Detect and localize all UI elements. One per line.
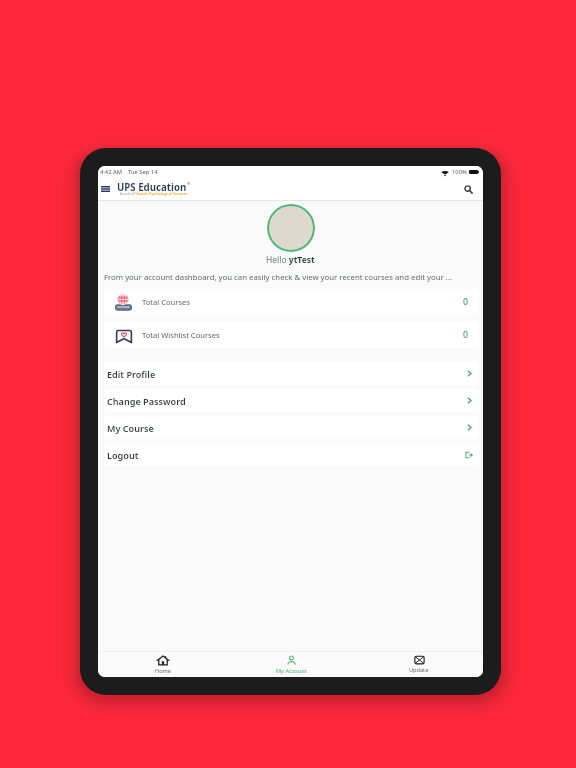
staticText: My Account <box>276 667 307 675</box>
staticText: Change Password <box>107 395 186 407</box>
staticText: 0 <box>463 296 469 308</box>
button[interactable]: My Course <box>104 416 479 439</box>
staticText: Hello ytTest <box>266 254 315 266</box>
staticText: 100% <box>452 168 467 176</box>
staticText: 0 <box>463 329 469 341</box>
staticText: A unit of Utsaah Psychological Services <box>120 191 188 196</box>
button[interactable]: Change Password <box>104 389 479 412</box>
button[interactable]: Search <box>456 178 480 200</box>
staticText: Edit Profile <box>107 368 156 380</box>
staticText: Home <box>155 667 171 675</box>
staticText: ® <box>187 181 191 186</box>
button[interactable]: Update <box>355 652 483 677</box>
staticText: Logout <box>107 449 139 461</box>
staticText: From your account dashboard, you can eas… <box>104 272 453 283</box>
staticText: Total Wishlist Courses <box>142 330 220 340</box>
button[interactable]: My Account <box>227 652 355 677</box>
staticText: Total Courses <box>142 297 190 307</box>
staticText: Update <box>409 666 429 674</box>
button[interactable]: Menu <box>98 178 113 200</box>
button[interactable]: Home <box>98 652 227 677</box>
button[interactable]: Total Courses <box>104 289 479 315</box>
button[interactable]: Logout <box>104 443 479 466</box>
staticText: 4:42 AM <box>100 168 122 176</box>
button[interactable]: Edit Profile <box>104 362 479 385</box>
staticText: UPS Education <box>117 181 187 194</box>
staticText: Tue Sep 14 <box>128 168 158 176</box>
button[interactable]: Total Wishlist Courses <box>104 322 479 348</box>
staticText: My Course <box>107 422 154 434</box>
